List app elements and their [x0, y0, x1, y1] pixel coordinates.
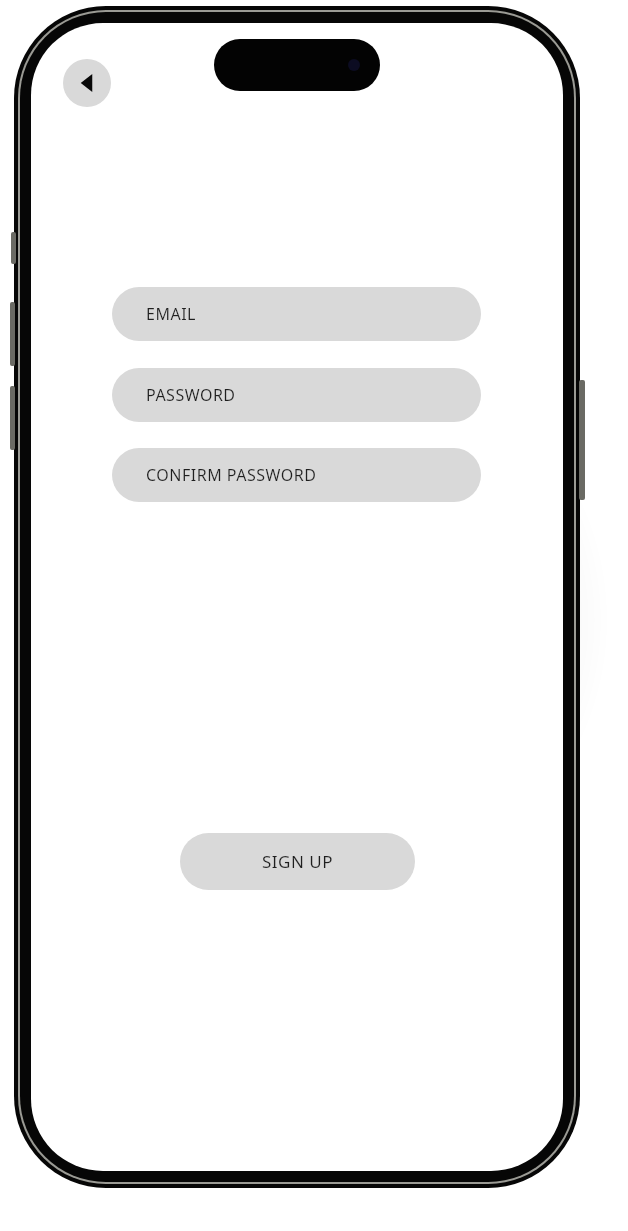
- button[interactable]: Back: [63, 59, 111, 107]
- button[interactable]: PASSWORD: [112, 368, 481, 422]
- button[interactable]: EMAIL: [112, 287, 481, 341]
- button[interactable]: SIGN UP: [180, 833, 415, 890]
- button[interactable]: CONFIRM PASSWORD: [112, 448, 481, 502]
- staticText: SIGN UP: [262, 850, 334, 873]
- staticText: PASSWORD: [146, 384, 236, 406]
- staticText: CONFIRM PASSWORD: [146, 464, 317, 486]
- staticText: EMAIL: [146, 303, 196, 325]
